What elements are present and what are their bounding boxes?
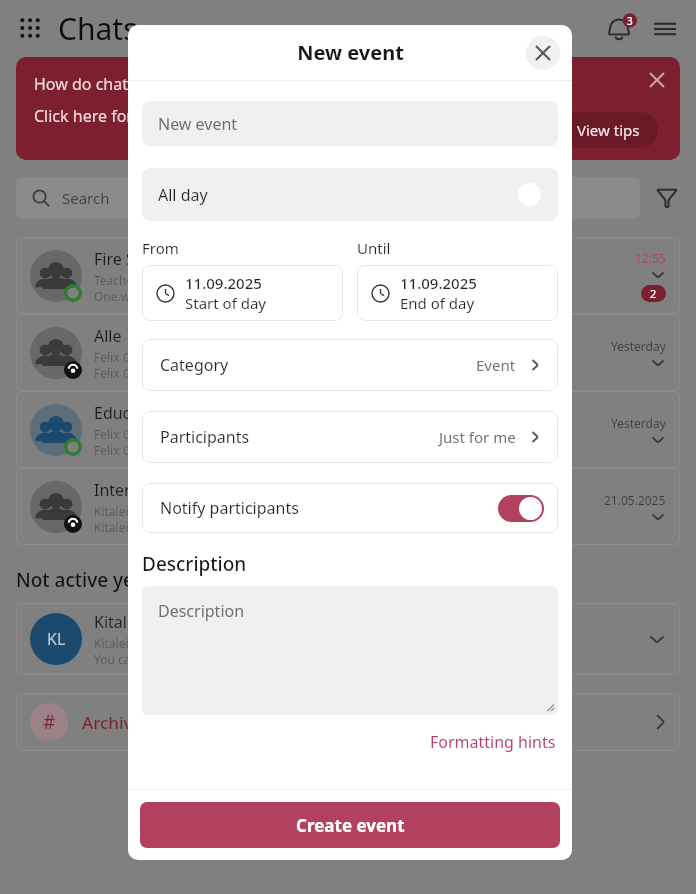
staticText: 3 <box>627 14 633 28</box>
button[interactable]: Apps <box>18 16 44 42</box>
staticText: View tips <box>577 120 640 140</box>
staticText: Archive <box>82 711 143 734</box>
button[interactable]: Toggle <box>498 495 544 522</box>
button[interactable]: Alle <box>16 314 680 391</box>
staticText: From <box>142 238 343 258</box>
button[interactable]: All day <box>158 168 543 221</box>
button[interactable]: Fire S <box>16 237 680 314</box>
staticText: Until <box>357 238 558 258</box>
staticText: Search <box>62 188 110 208</box>
button[interactable]: KL <box>16 603 680 675</box>
staticText: # <box>43 709 56 735</box>
staticText: Yesterday <box>611 338 666 354</box>
button[interactable]: How do chats <box>16 57 680 160</box>
staticText: Description <box>158 600 245 622</box>
staticText: Chats <box>58 8 138 49</box>
staticText: End of day <box>400 293 475 313</box>
button[interactable]: Create event <box>140 802 560 848</box>
staticText: Participants <box>160 426 250 448</box>
staticText: All day <box>158 184 208 206</box>
button[interactable]: Close <box>526 36 560 70</box>
staticText: Category <box>160 354 229 376</box>
button[interactable]: 11.09.2025 <box>156 265 343 321</box>
staticText: Alle <box>94 325 122 347</box>
button[interactable]: Description <box>142 586 558 715</box>
staticText: How do chats <box>34 73 136 95</box>
staticText: 21.05.2025 <box>604 492 666 508</box>
staticText: Create event <box>296 814 405 837</box>
button[interactable]: Notify participants <box>160 483 544 533</box>
staticText: Kitalei <box>94 519 129 535</box>
staticText: Start of day <box>185 293 267 313</box>
staticText: Event <box>476 355 516 375</box>
staticText: Yesterday <box>611 415 666 431</box>
staticText: Kitalei <box>94 503 129 519</box>
button[interactable]: # <box>16 693 680 751</box>
staticText: Teache <box>94 272 134 288</box>
other: Category Event <box>160 339 544 391</box>
staticText: 11.09.2025 <box>400 273 477 293</box>
staticText: 2 <box>650 286 657 301</box>
staticText: Notify participants <box>160 497 299 519</box>
staticText: KL <box>47 628 66 650</box>
staticText: You ca <box>94 651 131 667</box>
staticText: New event <box>158 113 238 135</box>
button[interactable]: 11.09.2025 <box>371 265 558 321</box>
button[interactable]: View tips <box>577 120 640 140</box>
staticText: Click here for <box>34 105 133 127</box>
button[interactable]: New event <box>158 101 558 146</box>
button[interactable]: Filter <box>654 185 680 211</box>
staticText: Felix G <box>94 365 132 381</box>
button[interactable]: Dismiss <box>646 69 668 91</box>
staticText: Description <box>142 551 247 577</box>
staticText: 11.09.2025 <box>185 273 262 293</box>
button[interactable]: Toggle <box>497 181 543 208</box>
staticText: New event <box>297 39 404 66</box>
staticText: 12:55 <box>635 250 666 266</box>
staticText: Felix G <box>94 349 132 365</box>
other: Participants Just for me <box>160 411 544 463</box>
staticText: Educ <box>94 402 131 424</box>
staticText: One.wa <box>94 288 137 304</box>
staticText: Felix G <box>94 426 132 442</box>
staticText: Kitale <box>94 611 136 633</box>
staticText: Just for me <box>439 427 516 447</box>
button[interactable]: Participants Just for me <box>142 411 558 463</box>
button[interactable]: Menu <box>652 16 678 42</box>
button[interactable]: Notifications <box>604 12 638 46</box>
staticText: Inter <box>94 479 131 501</box>
button[interactable]: Educ <box>16 391 680 468</box>
staticText: Not active ye <box>16 567 134 593</box>
staticText: Felix G <box>94 442 132 458</box>
button[interactable]: Inter <box>16 468 680 545</box>
staticText: Formatting hints <box>430 731 556 753</box>
button[interactable]: Search <box>32 177 624 219</box>
button[interactable]: Formatting hints <box>428 729 558 755</box>
staticText: Fire S <box>94 248 135 270</box>
staticText: Kitalei <box>94 635 129 651</box>
button[interactable]: Category Event <box>142 339 558 391</box>
